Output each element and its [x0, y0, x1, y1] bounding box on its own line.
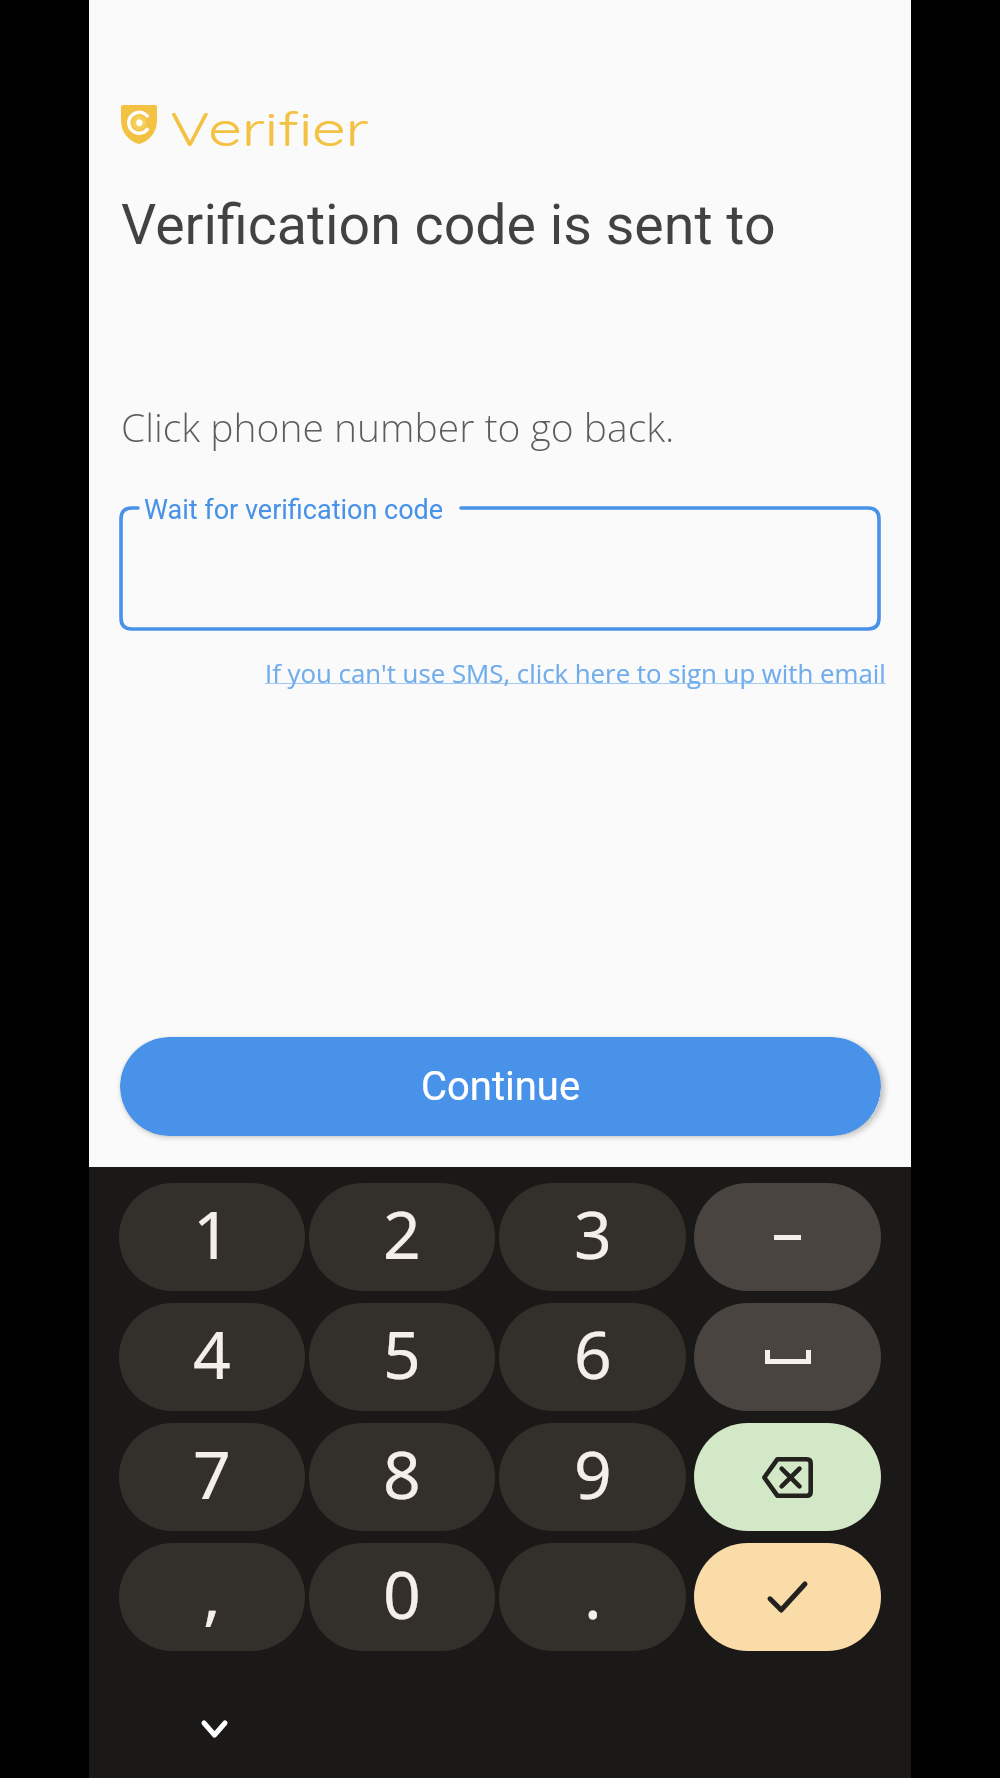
button[interactable]: Hide keyboard — [189, 1704, 239, 1754]
button[interactable]: 8 — [309, 1423, 495, 1531]
staticText: If you can't use SMS, click here to sign… — [265, 655, 886, 690]
staticText: 7 — [193, 1428, 231, 1518]
staticText: 0 — [383, 1548, 421, 1638]
button[interactable]: If you can't use SMS, click here to sign… — [265, 655, 886, 690]
staticText: . — [584, 1548, 602, 1638]
staticText: 6 — [574, 1308, 612, 1398]
staticText: 4 — [193, 1308, 231, 1398]
button[interactable]: 4 — [119, 1303, 305, 1411]
button[interactable]: Dash — [694, 1183, 881, 1291]
staticText: 3 — [574, 1188, 612, 1278]
staticText: 8 — [383, 1428, 421, 1518]
button[interactable]: 6 — [499, 1303, 686, 1411]
button[interactable]: . — [499, 1543, 686, 1651]
button[interactable]: 9 — [499, 1423, 686, 1531]
button[interactable]: Enter — [694, 1543, 881, 1651]
button[interactable]: 5 — [309, 1303, 495, 1411]
button[interactable]: 7 — [119, 1423, 305, 1531]
staticText: 5 — [383, 1308, 421, 1398]
button[interactable]: Continue — [120, 1037, 881, 1136]
staticText: 2 — [383, 1188, 421, 1278]
button[interactable]: 3 — [499, 1183, 686, 1291]
staticText: 1 — [193, 1188, 231, 1278]
staticText: Verification code is sent to — [121, 193, 776, 258]
staticText: 9 — [574, 1428, 612, 1518]
button[interactable]: Backspace — [694, 1423, 881, 1531]
button[interactable]: 2 — [309, 1183, 495, 1291]
staticText: , — [203, 1548, 221, 1638]
button[interactable]: 1 — [119, 1183, 305, 1291]
button[interactable]: 0 — [309, 1543, 495, 1651]
staticText: Wait for verification code — [144, 494, 444, 526]
staticText: Click phone number to go back. — [121, 400, 675, 453]
button[interactable]: , — [119, 1543, 305, 1651]
button[interactable]: Space — [694, 1303, 881, 1411]
staticText: Continue — [421, 1063, 581, 1110]
staticText: Verifier — [170, 99, 369, 158]
